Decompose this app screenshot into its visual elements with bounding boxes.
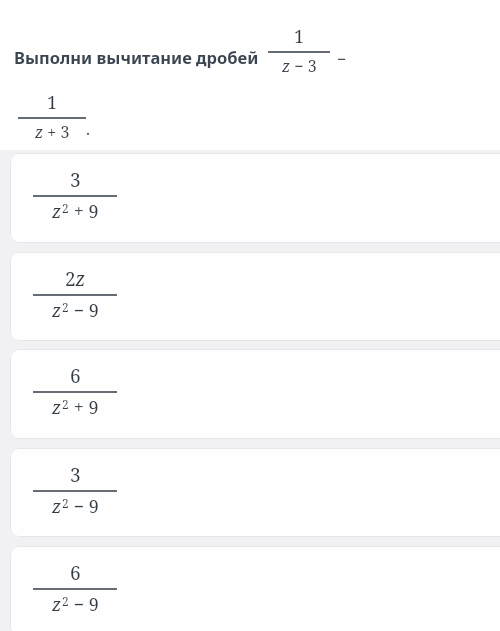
button[interactable]: 3 [10, 448, 500, 537]
staticText: 3 [70, 167, 81, 193]
button[interactable]: 6 [10, 349, 500, 439]
staticText: z [52, 395, 62, 420]
staticText: − 9 [69, 298, 99, 323]
staticText: 2 [62, 200, 69, 216]
staticText: z [52, 199, 62, 224]
staticText: 2z [65, 266, 86, 292]
staticText: − [337, 48, 347, 70]
staticText: 3 [70, 462, 81, 488]
staticText: 6 [70, 363, 81, 389]
staticText: + 9 [69, 199, 99, 224]
staticText: . [86, 118, 91, 140]
button[interactable]: 2z [10, 252, 500, 341]
staticText: 2 [62, 593, 69, 609]
staticText: z − 3 [282, 55, 317, 77]
button[interactable]: 6 [10, 546, 500, 631]
staticText: 2 [62, 495, 69, 511]
staticText: z + 3 [35, 121, 70, 143]
staticText: + 9 [69, 395, 99, 420]
staticText: 6 [70, 560, 81, 586]
staticText: 1 [294, 24, 305, 49]
staticText: 1 [47, 90, 58, 115]
staticText: 2 [62, 396, 69, 412]
staticText: z [52, 298, 62, 323]
button[interactable]: 3 [10, 153, 500, 243]
staticText: − 9 [69, 494, 99, 519]
staticText: 2 [62, 299, 69, 315]
staticText: Выполни вычитание дробей [14, 46, 259, 68]
staticText: z [52, 592, 62, 617]
staticText: − 9 [69, 592, 99, 617]
staticText: z [52, 494, 62, 519]
